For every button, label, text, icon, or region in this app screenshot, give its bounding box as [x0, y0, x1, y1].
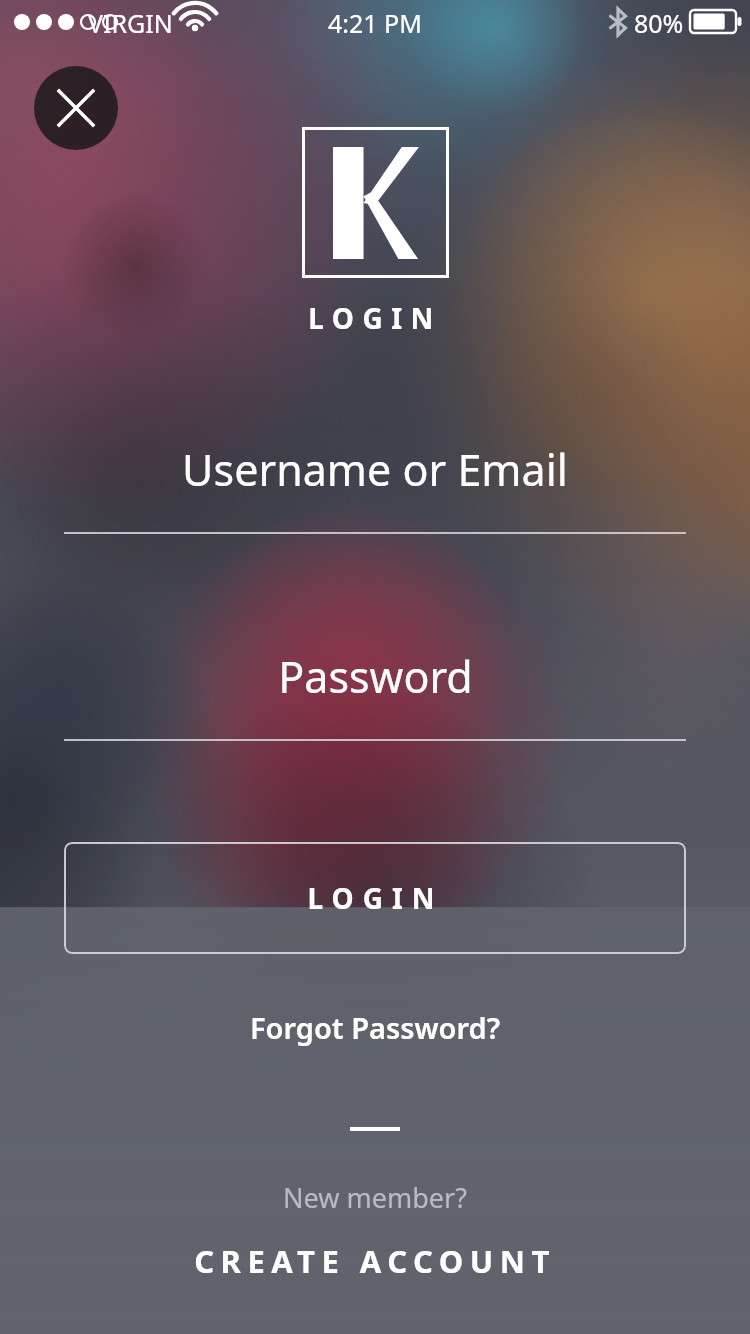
button[interactable]: New member? [0, 1179, 750, 1282]
staticText: Username or Email [182, 440, 568, 499]
staticText: CREATE ACCOUNT [194, 1240, 556, 1282]
staticText: 80% [634, 6, 684, 40]
staticText: VIRGIN [88, 6, 173, 40]
button[interactable]: Username or Email [0, 440, 750, 534]
staticText: LOGIN [307, 879, 444, 917]
staticText: Password [278, 647, 473, 706]
staticText: New member? [283, 1179, 467, 1216]
staticText: Forgot Password? [250, 1008, 501, 1047]
button[interactable]: Close [34, 66, 118, 150]
staticText: 4:21 PM [328, 6, 422, 40]
staticText: LOGIN [308, 299, 442, 337]
button[interactable]: Forgot Password? [232, 1000, 519, 1055]
button[interactable]: LOGIN [64, 842, 686, 954]
button[interactable]: Password [0, 647, 750, 741]
